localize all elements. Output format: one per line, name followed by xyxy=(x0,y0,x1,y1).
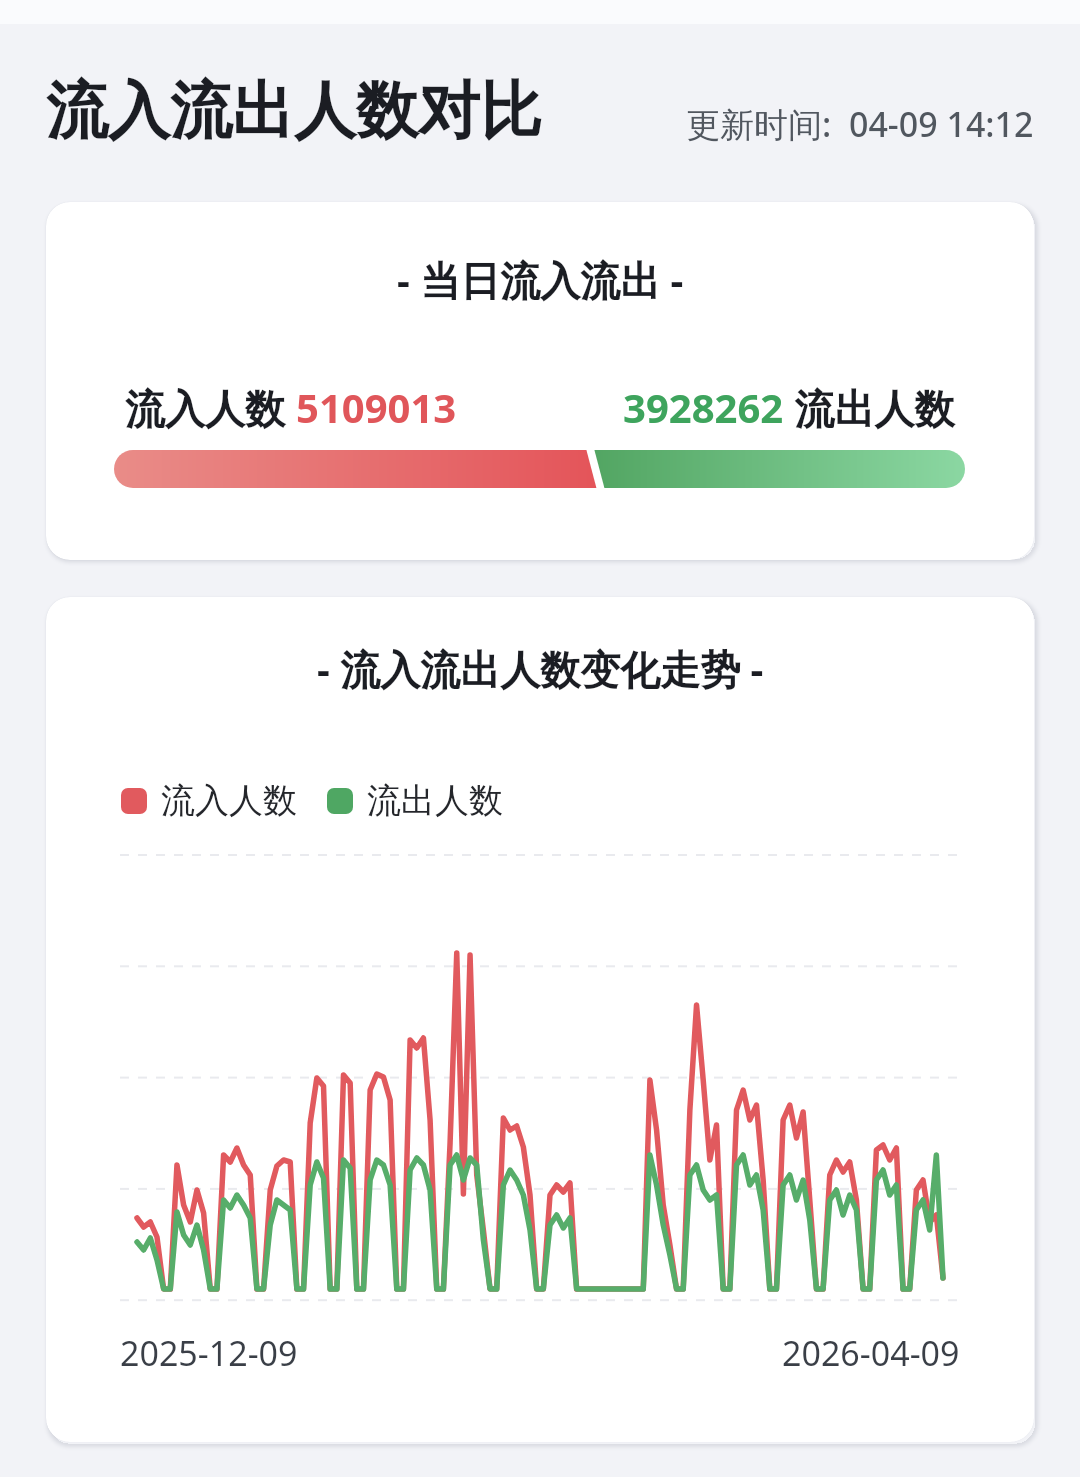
staticText: 2025-12-09 xyxy=(120,1330,298,1376)
staticText: 流出人数 xyxy=(367,779,503,822)
staticText: 流出人数 xyxy=(784,380,955,435)
staticText: - 当日流入流出 - xyxy=(397,252,684,307)
staticText: 3928262 xyxy=(623,380,784,434)
staticText: 流入人数 xyxy=(125,380,296,435)
staticText: 更新时间: 04-09 14:12 xyxy=(686,101,1034,147)
staticText: 流入人数 xyxy=(161,779,297,822)
button[interactable]: 流出人数 xyxy=(327,779,503,822)
staticText: - 流入流出人数变化走势 - xyxy=(317,641,764,696)
staticText: 2026-04-09 xyxy=(782,1330,960,1376)
button[interactable]: 流入人数 xyxy=(121,779,297,822)
button[interactable]: - 流入流出人数变化走势 - xyxy=(46,597,1034,1442)
staticText: 流入流出人数对比 xyxy=(46,72,542,150)
button[interactable]: - 当日流入流出 - xyxy=(46,202,1034,560)
staticText: 5109013 xyxy=(296,380,457,434)
